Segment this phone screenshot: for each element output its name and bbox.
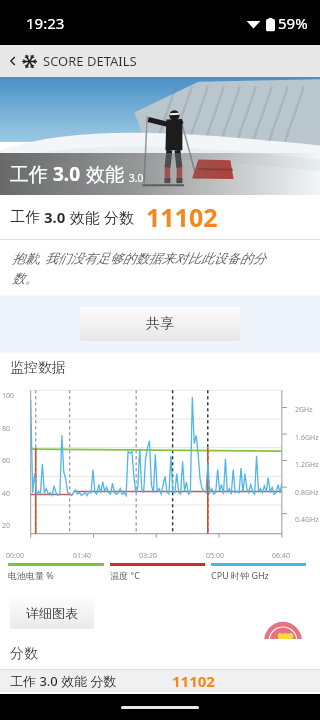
staticText: 0.4GHz	[295, 515, 319, 525]
staticText: 59%	[278, 13, 308, 33]
staticText: 电池电量 %	[8, 569, 54, 581]
staticText: 80	[2, 424, 11, 434]
staticText: 1.6GHz	[295, 433, 319, 443]
button[interactable]: 详细图表	[10, 597, 94, 629]
staticText: 详细图表	[26, 605, 78, 621]
staticText: 100	[2, 391, 15, 401]
staticText: 工作	[10, 161, 53, 187]
staticText: 11102	[146, 200, 218, 234]
staticText: 19:23	[26, 13, 65, 33]
staticText: 60	[2, 456, 11, 466]
staticText: 3.0	[53, 161, 81, 187]
staticText: 06:40	[272, 551, 290, 561]
staticText: 2GHz	[295, 405, 313, 415]
staticText: 1.2GHz	[295, 460, 319, 470]
staticText: 11102	[172, 671, 215, 691]
staticText: 效能 分数	[70, 207, 134, 227]
staticText: 温度 °C	[110, 569, 140, 581]
staticText: 00:00	[6, 551, 24, 561]
staticText: 抱歉, 我们没有足够的数据来对比此设备的分 数。	[12, 249, 266, 287]
staticText: 监控数据	[10, 359, 66, 377]
staticText: 3.0	[129, 171, 144, 185]
staticText: 05:00	[206, 551, 224, 561]
button[interactable]: 共享	[80, 307, 240, 341]
staticText: 0.8GHz	[295, 488, 319, 498]
staticText: 03:20	[139, 551, 157, 561]
staticText: 分数	[10, 645, 38, 663]
staticText: 01:40	[73, 551, 91, 561]
staticText: CPU 时钟 GHz	[211, 569, 269, 581]
staticText: 效能	[81, 161, 124, 187]
button[interactable]: Back	[4, 52, 22, 70]
staticText: 20	[2, 521, 11, 531]
staticText: 共享	[146, 315, 174, 333]
staticText: 工作	[10, 208, 40, 227]
staticText: SCORE DETAILS	[43, 52, 137, 70]
staticText: 工作 3.0 效能 分数	[10, 672, 117, 690]
staticText: 3.0	[40, 207, 70, 227]
staticText: 40	[2, 489, 11, 499]
